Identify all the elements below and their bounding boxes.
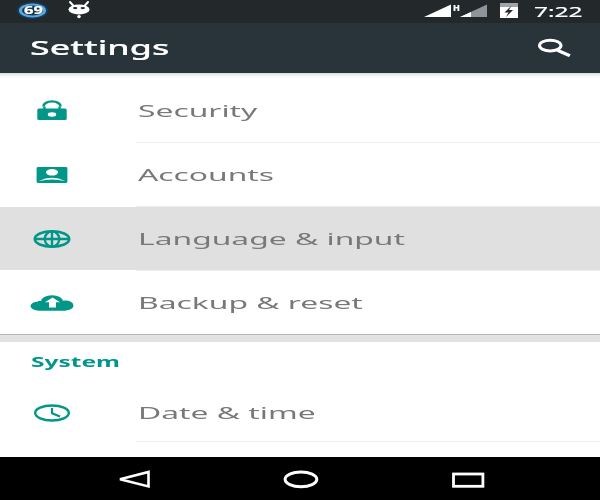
staticText: 7:22 [534,2,583,21]
button[interactable]: Security [0,79,600,142]
staticText: Backup & reset [138,291,364,314]
staticText: Date & time [138,401,316,424]
button[interactable]: Back [104,457,164,500]
button[interactable]: Accounts [0,143,600,206]
staticText: System [31,352,120,371]
button[interactable]: Language & input [0,207,600,270]
button[interactable]: Home [270,457,330,500]
staticText: Settings [30,34,170,61]
button[interactable]: Backup & reset [0,271,600,334]
button[interactable]: Date & time [0,378,600,441]
staticText: H [453,1,461,13]
button[interactable]: Search [527,25,573,65]
staticText: 69 [24,2,43,17]
staticText: Accounts [138,163,274,186]
button[interactable]: Recent apps [438,457,498,500]
staticText: Security [138,99,258,122]
staticText: Language & input [138,227,405,250]
